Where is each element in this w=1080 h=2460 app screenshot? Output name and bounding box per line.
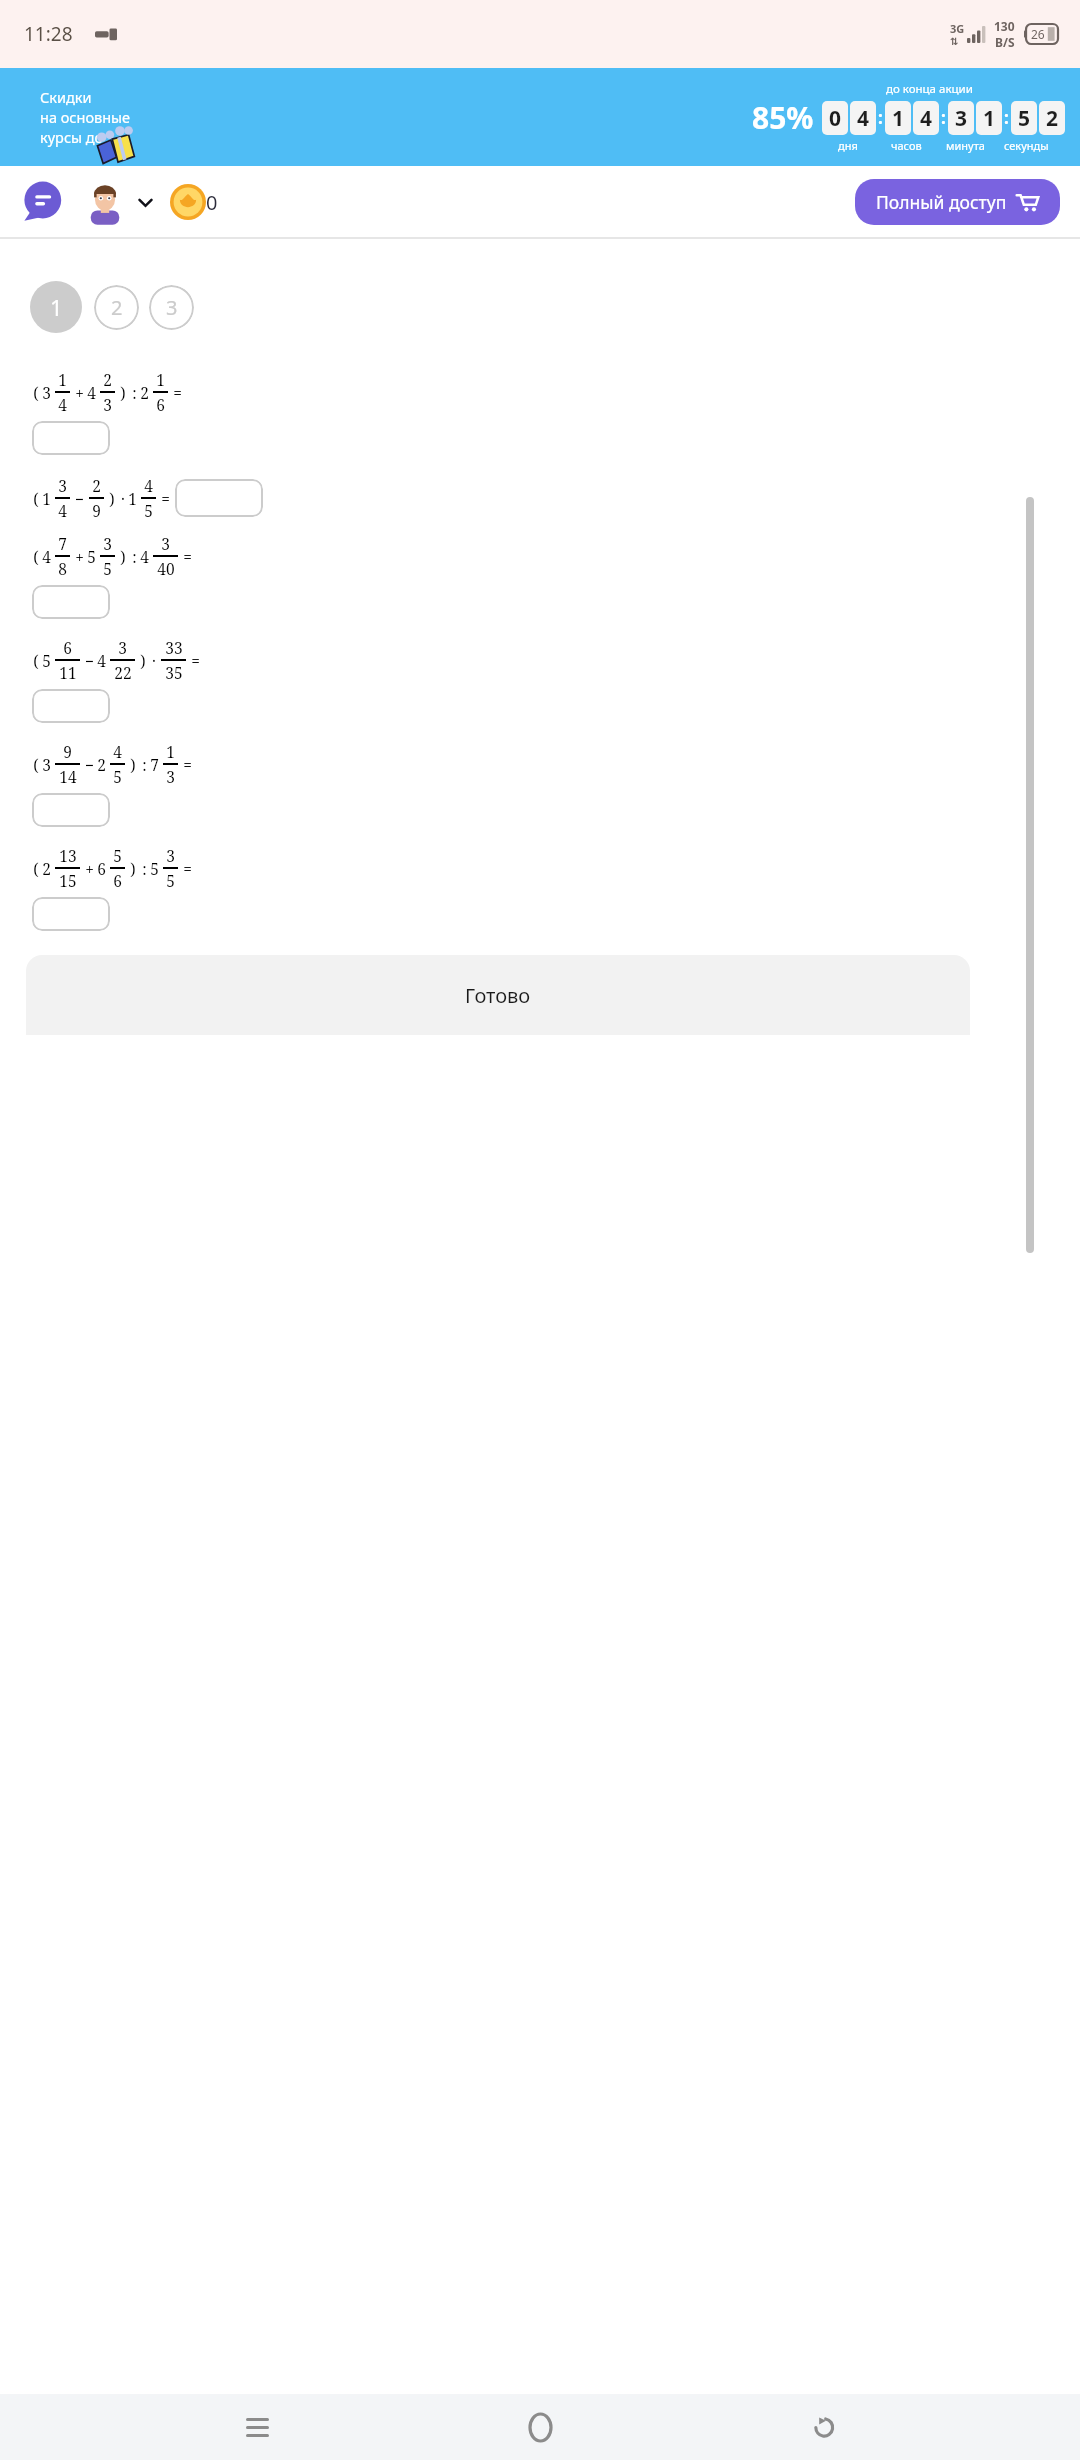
staticText: (	[33, 488, 39, 509]
staticText: 5	[113, 766, 122, 787]
staticText: 11	[59, 662, 77, 683]
staticText: 4	[97, 650, 106, 671]
button[interactable]: Expand profile	[132, 189, 158, 215]
staticText: 3	[103, 533, 112, 554]
staticText: 35	[165, 662, 183, 683]
staticText: ·	[152, 650, 156, 671]
staticText: Полный доступ	[876, 190, 1007, 214]
button[interactable]: 0	[170, 184, 218, 220]
staticText: 3G	[950, 21, 965, 36]
button[interactable]: Recent apps	[230, 2400, 284, 2454]
staticText: 5	[1018, 104, 1031, 133]
staticText: 5	[150, 858, 159, 879]
button[interactable]	[32, 897, 110, 931]
staticText: дня	[838, 138, 858, 153]
staticText: 5	[166, 870, 175, 891]
staticText: 14	[59, 766, 77, 787]
staticText: (	[33, 382, 39, 403]
staticText: )	[120, 546, 126, 567]
staticText: 130	[994, 18, 1015, 34]
staticText: 4	[140, 546, 149, 567]
button[interactable]: 3	[149, 285, 194, 330]
staticText: 5	[113, 845, 122, 866]
staticText: секунды	[1004, 138, 1049, 153]
staticText: 1	[983, 104, 996, 133]
staticText: 7	[150, 754, 159, 775]
staticText: 4	[58, 394, 67, 415]
staticText: =	[161, 488, 170, 509]
staticText: 3	[166, 845, 175, 866]
staticText: 8	[58, 558, 67, 579]
staticText: :	[132, 546, 137, 567]
staticText: :	[142, 858, 147, 879]
staticText: 7	[58, 533, 67, 554]
button[interactable]	[32, 421, 110, 455]
staticText: 5	[103, 558, 112, 579]
staticText: +	[75, 546, 84, 567]
staticText: 4	[144, 475, 153, 496]
button[interactable]: Готово	[26, 955, 970, 1035]
staticText: 15	[59, 870, 77, 891]
staticText: Скидки	[40, 87, 92, 107]
staticText: 9	[92, 500, 101, 521]
staticText: 0	[829, 104, 842, 133]
staticText: 5	[42, 650, 51, 671]
staticText: 0	[206, 189, 218, 216]
button[interactable]	[175, 479, 263, 517]
staticText: (	[33, 858, 39, 879]
staticText: −	[85, 754, 94, 775]
staticText: 2	[42, 858, 51, 879]
staticText: 2	[1046, 104, 1059, 133]
staticText: 6	[63, 637, 72, 658]
staticText: 6	[113, 870, 122, 891]
staticText: 3	[42, 382, 51, 403]
staticText: (	[33, 650, 39, 671]
button[interactable]: Back	[797, 2400, 851, 2454]
staticText: 3	[42, 754, 51, 775]
button[interactable]	[32, 585, 110, 619]
button[interactable]: Home	[513, 2400, 567, 2454]
staticText: 22	[114, 662, 132, 683]
staticText: 1	[58, 369, 67, 390]
staticText: 4	[920, 104, 933, 133]
staticText: 2	[97, 754, 106, 775]
button[interactable]: Полный доступ	[855, 179, 1060, 225]
button[interactable]	[32, 689, 110, 723]
staticText: часов	[891, 138, 922, 153]
staticText: =	[173, 382, 182, 403]
button[interactable]	[32, 793, 110, 827]
staticText: 1	[128, 488, 137, 509]
button[interactable]: Chat	[22, 182, 62, 222]
staticText: −	[85, 650, 94, 671]
staticText: :	[132, 382, 137, 403]
staticText: 2	[92, 475, 101, 496]
staticText: 3	[58, 475, 67, 496]
staticText: 1	[892, 104, 905, 133]
staticText: =	[191, 650, 200, 671]
staticText: 11:28	[24, 21, 73, 47]
staticText: 3	[166, 294, 178, 321]
staticText: =	[183, 858, 192, 879]
button[interactable]: Profile	[84, 181, 126, 223]
staticText: :	[142, 754, 147, 775]
staticText: 13	[59, 845, 77, 866]
staticText: B/S	[995, 34, 1015, 50]
button[interactable]: Скидки	[0, 68, 1080, 166]
staticText: 85%	[752, 97, 814, 138]
staticText: )	[120, 382, 126, 403]
staticText: ·	[121, 488, 125, 509]
staticText: на основные	[40, 107, 131, 127]
staticText: 1	[50, 292, 63, 322]
staticText: 1	[42, 488, 51, 509]
button[interactable]: 1	[30, 281, 82, 333]
staticText: до конца акции	[886, 81, 973, 97]
staticText: :	[941, 106, 946, 129]
staticText: +	[85, 858, 94, 879]
staticText: 3	[103, 394, 112, 415]
staticText: 33	[165, 637, 183, 658]
staticText: :	[1004, 106, 1009, 129]
button[interactable]: 2	[94, 285, 139, 330]
staticText: 5	[144, 500, 153, 521]
staticText: 2	[111, 294, 123, 321]
staticText: ⇅	[950, 36, 959, 48]
